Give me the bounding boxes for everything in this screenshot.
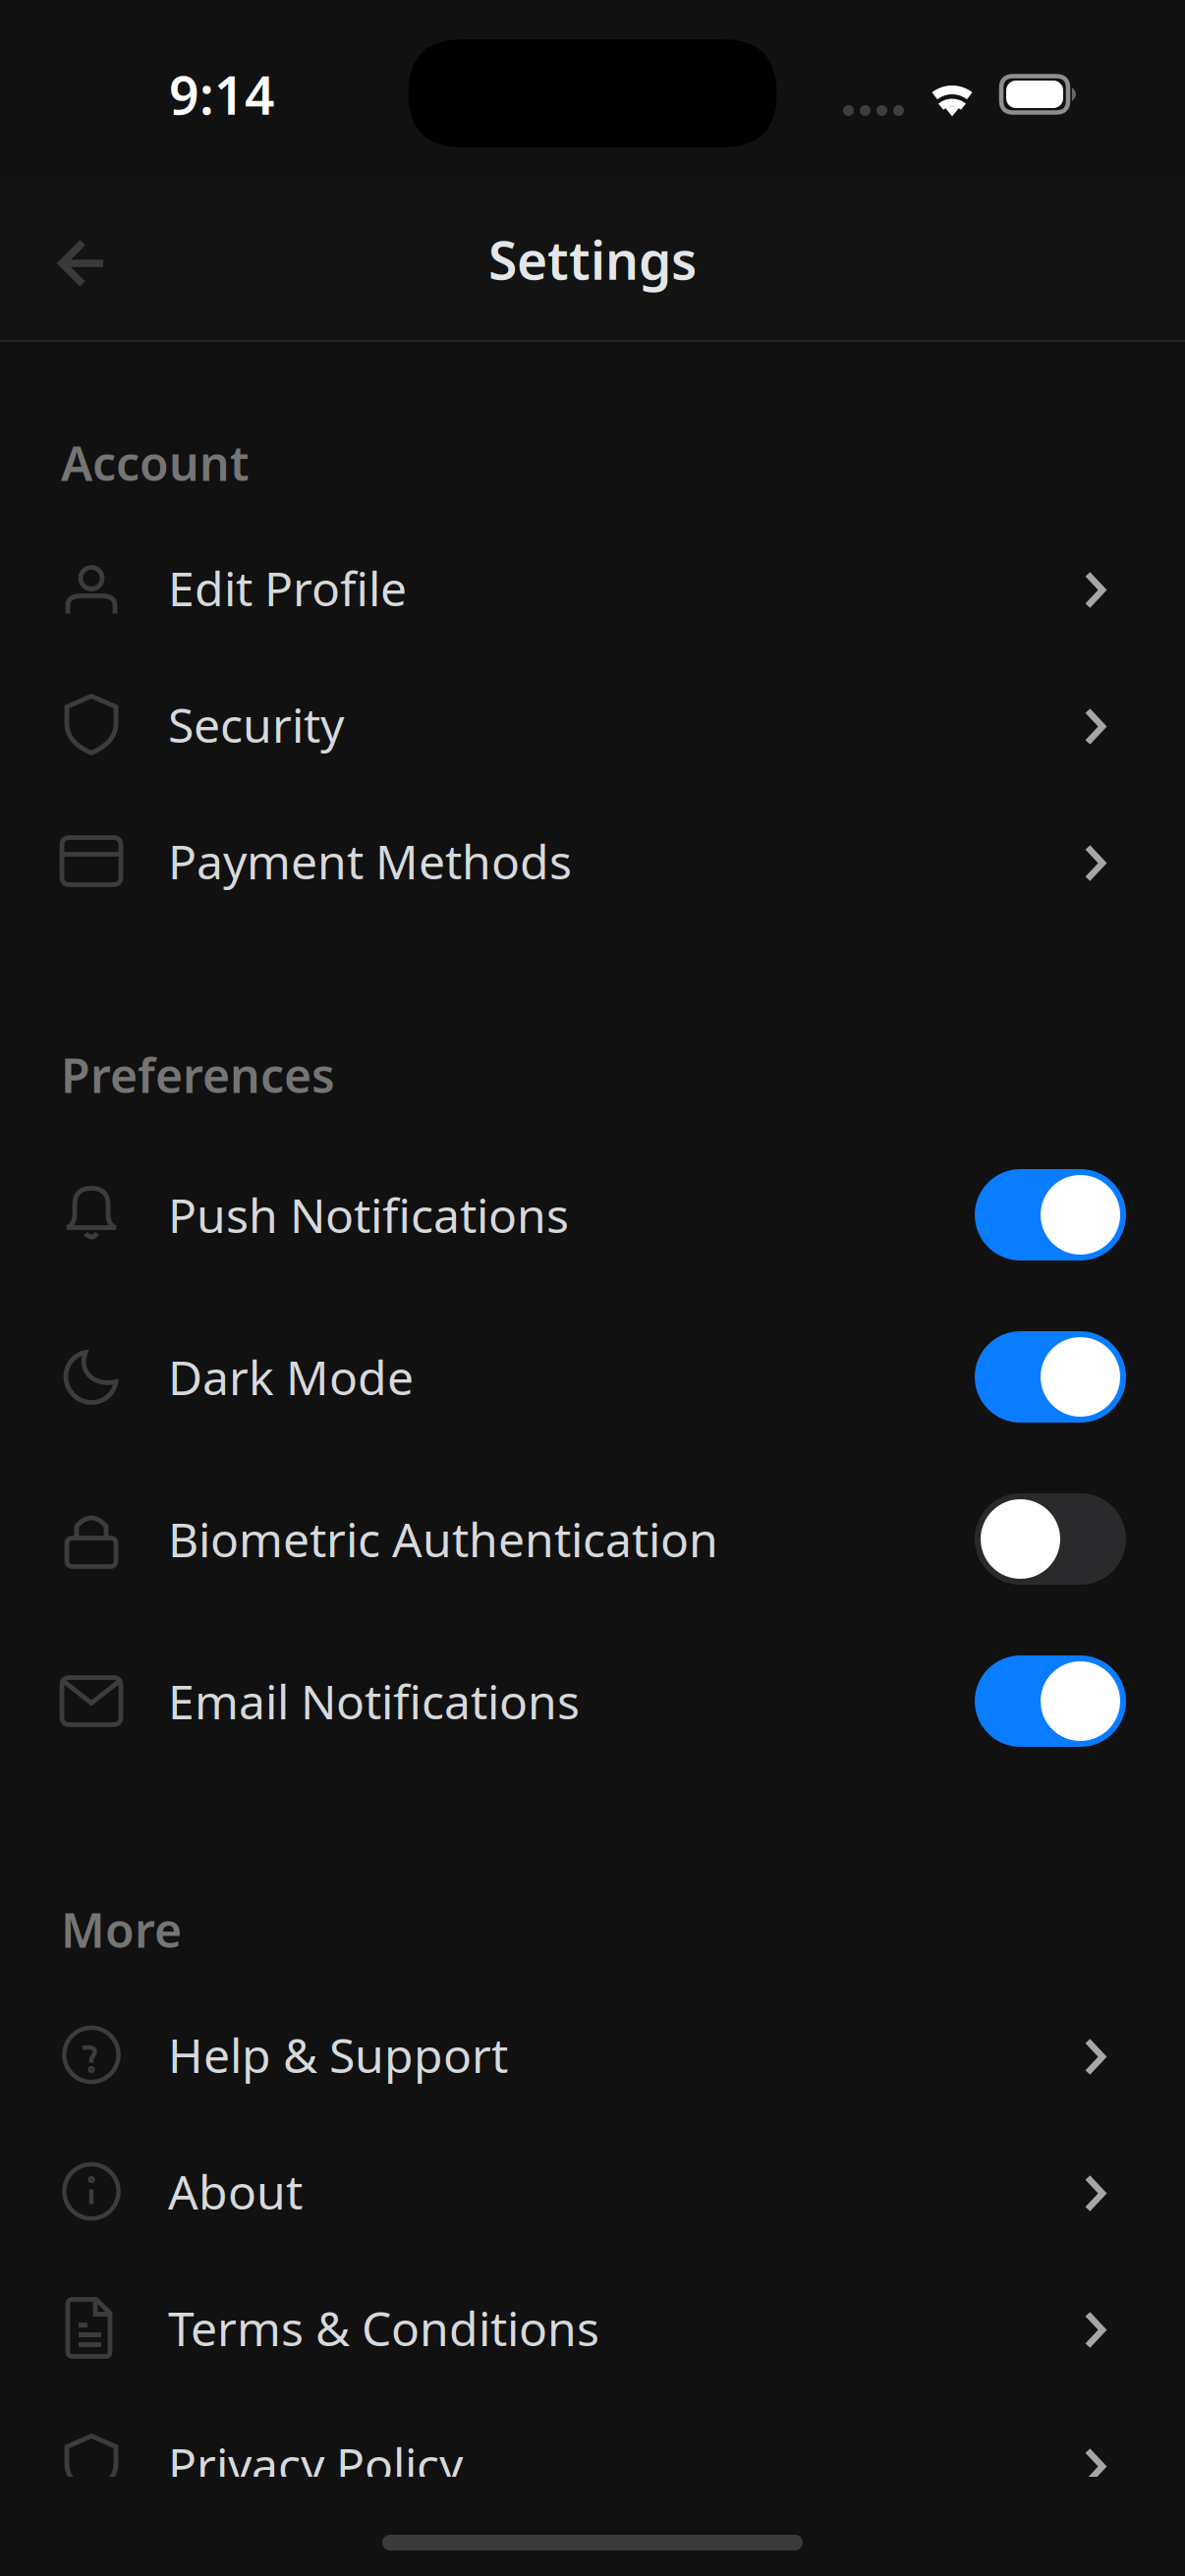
button[interactable]: Security [0,656,1185,793]
button[interactable]: Terms & Conditions [0,2260,1185,2396]
staticText: Security [168,693,344,756]
button[interactable]: Dark Mode [0,1296,1185,1458]
staticText: Privacy Policy [168,2433,463,2496]
staticText: Preferences [61,1043,335,1106]
button[interactable]: Edit Profile [0,520,1185,656]
button[interactable]: About [0,2123,1185,2260]
staticText: Settings [488,225,697,294]
button[interactable]: Biometric Authentication [0,1458,1185,1620]
staticText: More [61,1898,182,1961]
button[interactable]: Push Notifications [0,1134,1185,1296]
staticText: Push Notifications [168,1183,569,1246]
staticText: Edit Profile [168,557,407,619]
staticText: 9:14 [169,60,275,129]
button[interactable]: Back [25,201,141,317]
staticText: Email Notifications [168,1670,580,1732]
button[interactable]: Help & Support [0,1987,1185,2123]
staticText: Terms & Conditions [168,2297,599,2359]
staticText: Help & Support [168,2023,508,2086]
button[interactable]: Email Notifications [0,1620,1185,1782]
button[interactable]: Privacy Policy [0,2396,1185,2533]
staticText: Biometric Authentication [168,1508,718,1570]
staticText: Dark Mode [168,1346,414,1408]
staticText: Payment Methods [168,830,572,892]
staticText: About [168,2160,303,2223]
staticText: Account [61,431,249,494]
button[interactable]: Payment Methods [0,793,1185,929]
